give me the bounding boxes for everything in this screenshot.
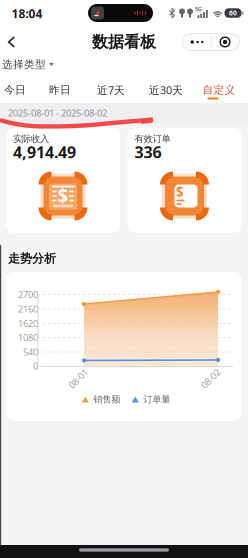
- staticText: 4,914.49: [13, 141, 76, 163]
- button[interactable]: More options: [184, 33, 210, 50]
- staticText: 有效订单: [134, 133, 170, 145]
- staticText: 今日: [4, 83, 26, 96]
- staticText: 2700: [18, 288, 38, 301]
- button[interactable]: Back: [3, 31, 20, 53]
- button[interactable]: 实际收入: [6, 128, 120, 233]
- button[interactable]: 昨日: [49, 83, 71, 96]
- button[interactable]: 近7天: [97, 83, 125, 97]
- staticText: 数据看板: [92, 32, 156, 52]
- staticText: 540: [23, 346, 38, 358]
- staticText: 销售额: [93, 394, 120, 405]
- staticText: 近30天: [149, 83, 183, 97]
- staticText: 昨日: [49, 83, 71, 96]
- button[interactable]: 选择类型: [2, 58, 54, 71]
- staticText: 18:04: [11, 5, 42, 21]
- staticText: $: [176, 183, 184, 200]
- button[interactable]: Close: [212, 33, 238, 50]
- staticText: $: [57, 183, 68, 208]
- staticText: 选择类型: [2, 58, 46, 71]
- staticText: 5G: [195, 5, 202, 13]
- staticText: 2025-08-01 - 2025-08-02: [8, 107, 107, 119]
- staticText: 1080: [18, 331, 38, 344]
- staticText: 2160: [18, 303, 38, 315]
- button[interactable]: 今日: [4, 83, 26, 96]
- staticText: 自定义: [202, 83, 235, 96]
- staticText: 0: [33, 360, 38, 372]
- button[interactable]: 自定义: [202, 83, 235, 96]
- staticText: 走势分析: [8, 251, 56, 266]
- staticText: 实际收入: [13, 133, 49, 145]
- staticText: 近7天: [97, 83, 125, 97]
- button[interactable]: 有效订单: [127, 128, 241, 233]
- staticText: 08-02: [199, 372, 222, 385]
- staticText: 336: [134, 141, 161, 163]
- staticText: 1620: [18, 317, 38, 330]
- staticText: 订单量: [143, 394, 170, 405]
- button[interactable]: 2025-08-01 - 2025-08-02: [0, 103, 248, 123]
- staticText: 60: [229, 9, 237, 17]
- button[interactable]: 近30天: [149, 83, 183, 97]
- staticText: 08-01: [66, 372, 89, 385]
